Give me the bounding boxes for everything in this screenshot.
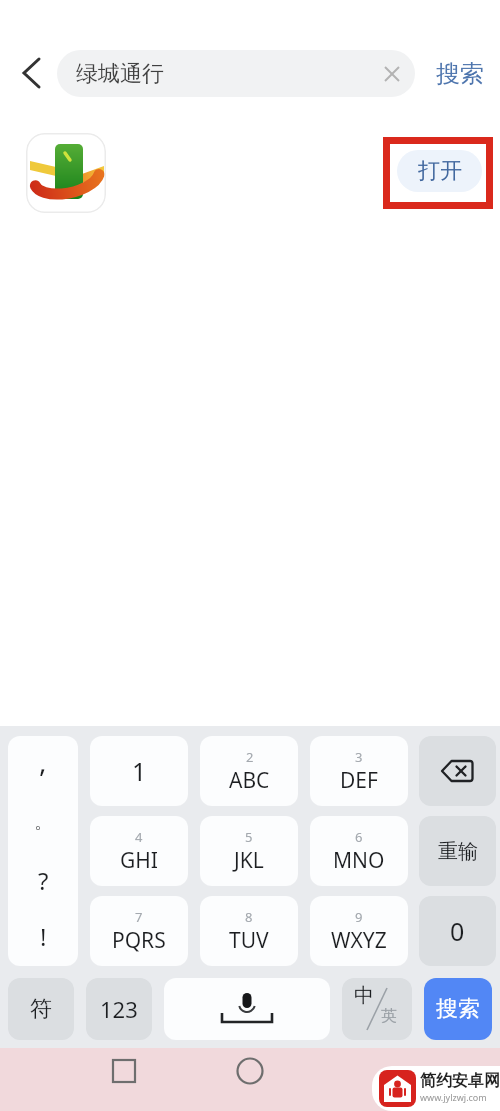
button[interactable] — [103, 1050, 145, 1092]
staticText: PQRS — [112, 926, 166, 955]
staticText: 打开 — [418, 157, 462, 185]
staticText: TUV — [229, 926, 269, 955]
staticText: ! — [40, 920, 47, 953]
button[interactable]: 6 — [310, 816, 408, 886]
button[interactable]: 9 — [310, 896, 408, 966]
button[interactable] — [8, 736, 78, 966]
staticText: ? — [38, 864, 49, 897]
button[interactable]: 3 — [310, 736, 408, 806]
staticText: 2 — [246, 748, 254, 766]
button[interactable] — [229, 1050, 271, 1092]
button[interactable]: 123 — [86, 978, 152, 1040]
staticText: 4 — [135, 828, 143, 846]
button[interactable] — [419, 736, 496, 806]
staticText: JKL — [234, 846, 264, 875]
button[interactable]: 1 — [90, 736, 188, 806]
button[interactable]: 8 — [200, 896, 298, 966]
staticText: 9 — [355, 908, 363, 926]
button[interactable]: 中 — [342, 978, 412, 1040]
staticText: 搜索 — [436, 59, 484, 89]
staticText: GHI — [120, 846, 158, 875]
staticText: 重输 — [438, 839, 478, 864]
staticText: 符 — [30, 995, 52, 1023]
button[interactable]: 7 — [90, 896, 188, 966]
button[interactable]: 搜索 — [425, 50, 495, 97]
button[interactable]: 0 — [419, 896, 496, 966]
staticText: 123 — [100, 994, 138, 1024]
staticText: 0 — [450, 914, 465, 948]
staticText: 5 — [245, 828, 253, 846]
button[interactable]: 重输 — [419, 816, 496, 886]
button[interactable] — [26, 133, 106, 213]
staticText: 搜索 — [436, 995, 480, 1023]
staticText: 中 — [354, 983, 374, 1008]
staticText: WXYZ — [331, 926, 387, 955]
staticText: MNO — [333, 846, 385, 875]
button[interactable]: 绿城通行 — [57, 50, 415, 97]
button[interactable]: 打开 — [397, 150, 482, 192]
staticText: DEF — [340, 766, 378, 795]
staticText: 3 — [355, 748, 363, 766]
button[interactable]: 5 — [200, 816, 298, 886]
staticText: 绿城通行 — [76, 60, 164, 88]
staticText: 简约安卓网 — [420, 1071, 500, 1091]
button[interactable]: 4 — [90, 816, 188, 886]
button[interactable] — [12, 50, 50, 96]
staticText: 英 — [381, 1006, 397, 1026]
staticText: 。 — [34, 811, 52, 834]
button[interactable]: 搜索 — [424, 978, 492, 1040]
staticText: 7 — [135, 908, 143, 926]
button[interactable]: 2 — [200, 736, 298, 806]
staticText: 8 — [245, 908, 253, 926]
button[interactable]: 符 — [8, 978, 74, 1040]
button[interactable] — [164, 978, 330, 1040]
staticText: www.jylzwj.com — [420, 1091, 487, 1103]
staticText: ABC — [229, 766, 270, 795]
staticText: 6 — [355, 828, 363, 846]
staticText: 1 — [132, 754, 147, 788]
staticText: , — [39, 742, 47, 780]
